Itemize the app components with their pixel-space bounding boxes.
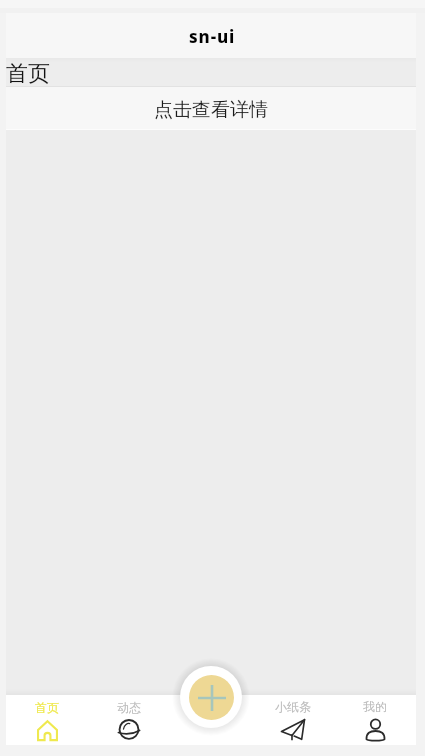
staticText: sn-ui [189,25,236,48]
button[interactable]: 小纸条 [252,695,334,745]
button[interactable]: 我的 [334,695,416,745]
staticText: 首页 [35,700,59,715]
button[interactable]: 首页 [6,695,88,745]
staticText: 小纸条 [275,699,311,714]
button[interactable]: Add [173,659,249,735]
button[interactable]: 动态 [88,695,170,745]
staticText: 点击查看详情 [154,98,268,122]
staticText: 我的 [363,699,387,714]
button[interactable]: 点击查看详情 [6,87,416,129]
staticText: 动态 [117,700,141,715]
staticText: 首页 [6,60,50,88]
